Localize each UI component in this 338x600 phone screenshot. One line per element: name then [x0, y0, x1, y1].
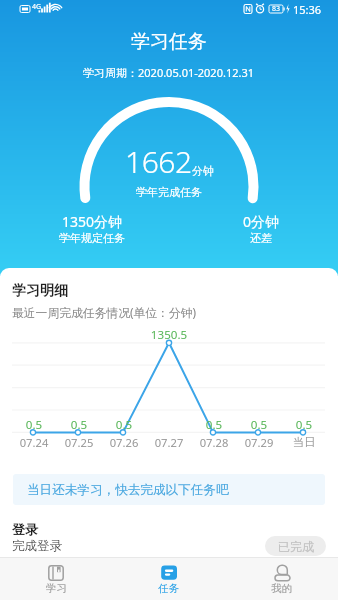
staticText: 1662 [125, 141, 192, 182]
staticText: 4G [32, 2, 42, 12]
staticText: 最近一周完成任务情况(单位：分钟) [12, 304, 197, 320]
staticText: 登录 [12, 521, 38, 537]
button[interactable]: 我的 [225, 558, 338, 600]
staticText: 07.28 [192, 435, 236, 450]
staticText: 已完成 [278, 539, 314, 554]
staticText: 学习明细 [12, 282, 68, 300]
staticText: 0.5 [57, 417, 101, 433]
staticText: 0.5 [102, 417, 146, 433]
staticText: 1350分钟 [62, 212, 123, 231]
staticText: 完成登录 [12, 538, 62, 554]
button[interactable]: 任务 [112, 558, 225, 600]
button[interactable]: 当日还未学习，快去完成以下任务吧 [13, 474, 325, 505]
staticText: 07.25 [57, 435, 101, 450]
staticText: 当日还未学习，快去完成以下任务吧 [27, 482, 229, 498]
staticText: 任务 [158, 582, 179, 595]
staticText: 学年规定任务 [59, 231, 125, 245]
staticText: 07.27 [147, 435, 191, 450]
staticText: 0分钟 [243, 212, 280, 231]
staticText: 分钟 [192, 164, 214, 178]
staticText: 0.5 [282, 417, 326, 433]
staticText: 83 [272, 4, 281, 14]
staticText: 学习周期：2020.05.01-2020.12.31 [83, 65, 255, 80]
staticText: 学年完成任务 [136, 185, 202, 199]
staticText: 我的 [271, 582, 292, 595]
staticText: 0.5 [12, 417, 56, 433]
staticText: 07.29 [237, 435, 281, 450]
staticText: 0.5 [237, 417, 281, 433]
staticText: 1350.5 [147, 327, 191, 343]
button[interactable]: 完成登录 [0, 531, 338, 561]
staticText: 学习 [46, 582, 67, 595]
staticText: 07.24 [12, 435, 56, 450]
staticText: 0.5 [192, 417, 236, 433]
staticText: 15:36 [293, 2, 322, 17]
staticText: 还差 [250, 231, 272, 245]
staticText: 当日 [282, 435, 326, 449]
staticText: 学习任务 [131, 30, 207, 54]
button[interactable]: 学习 [0, 558, 112, 600]
staticText: 07.26 [102, 435, 146, 450]
